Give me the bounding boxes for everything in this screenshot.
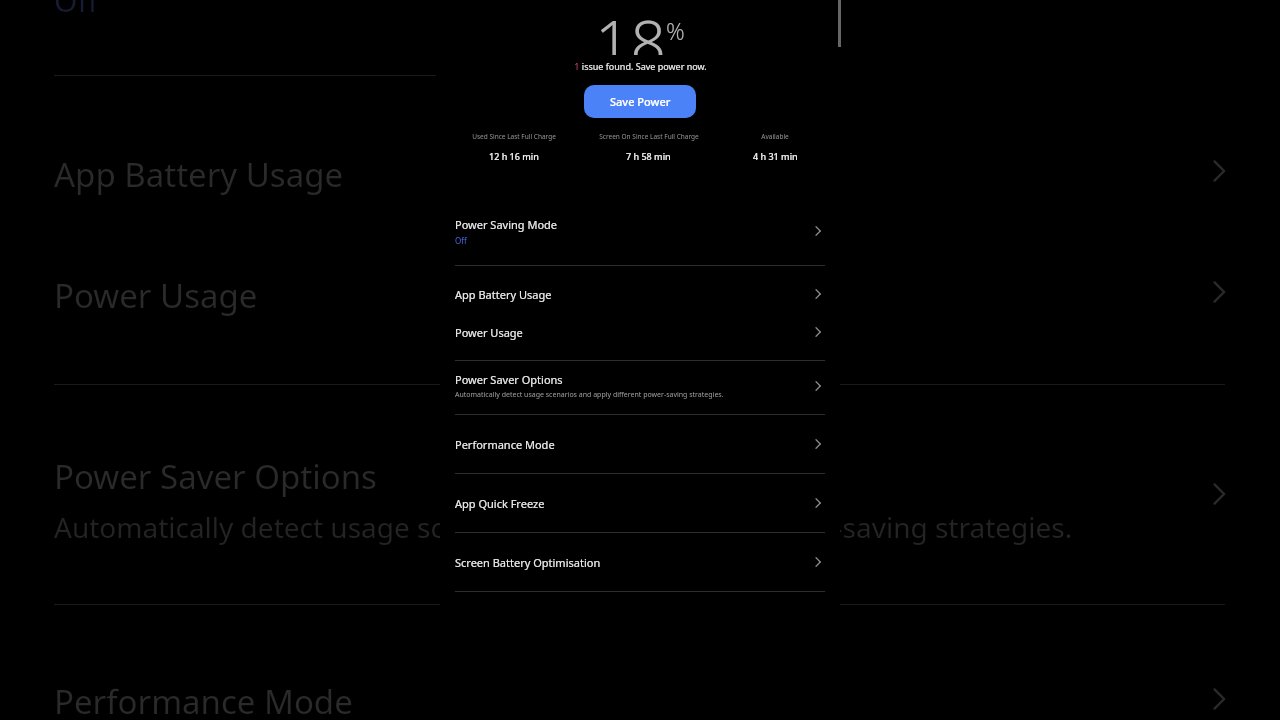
staticText: 1 issue found. Save power now.	[574, 60, 707, 72]
staticText: Power Saver Options	[54, 454, 377, 499]
staticText: Power Saver Options	[455, 372, 563, 387]
staticText: Automatically detect usage sce	[54, 508, 460, 546]
staticText: Performance Mode	[54, 679, 353, 720]
staticText: Available	[761, 132, 789, 141]
button[interactable]: Power Saving Mode	[455, 209, 825, 253]
button[interactable]: App Battery Usage	[455, 275, 825, 313]
staticText: 4 h 31 min	[753, 150, 798, 162]
staticText: Off	[455, 235, 467, 246]
staticText: Save Power	[610, 94, 671, 109]
staticText: Screen On Since Last Full Charge	[599, 132, 699, 141]
staticText: %	[666, 15, 685, 46]
button[interactable]: Screen Battery Optimisation	[455, 533, 825, 591]
button[interactable]: Power Usage	[455, 313, 825, 351]
staticText: Power Saving Mode	[455, 217, 558, 232]
staticText: Off	[54, 0, 99, 21]
button[interactable]: Power Saver Options	[455, 368, 825, 403]
staticText: App Quick Freeze	[455, 496, 545, 511]
button[interactable]: Performance Mode	[455, 415, 825, 473]
staticText: Power Usage	[455, 325, 523, 340]
staticText: 18	[595, 0, 666, 55]
staticText: r-saving strategies.	[822, 508, 1073, 546]
staticText: Performance Mode	[455, 437, 555, 452]
staticText: Used Since Last Full Charge	[472, 132, 556, 141]
staticText: App Battery Usage	[455, 287, 552, 302]
staticText: Automatically detect usage scenarios and…	[455, 390, 724, 400]
staticText: 12 h 16 min	[489, 150, 539, 162]
staticText: 7 h 58 min	[626, 150, 671, 162]
button[interactable]: App Quick Freeze	[455, 474, 825, 532]
staticText: Screen Battery Optimisation	[455, 555, 601, 570]
staticText: App Battery Usage	[54, 152, 344, 197]
staticText: Power Usage	[54, 273, 258, 318]
button[interactable]: Save Power	[584, 85, 696, 118]
